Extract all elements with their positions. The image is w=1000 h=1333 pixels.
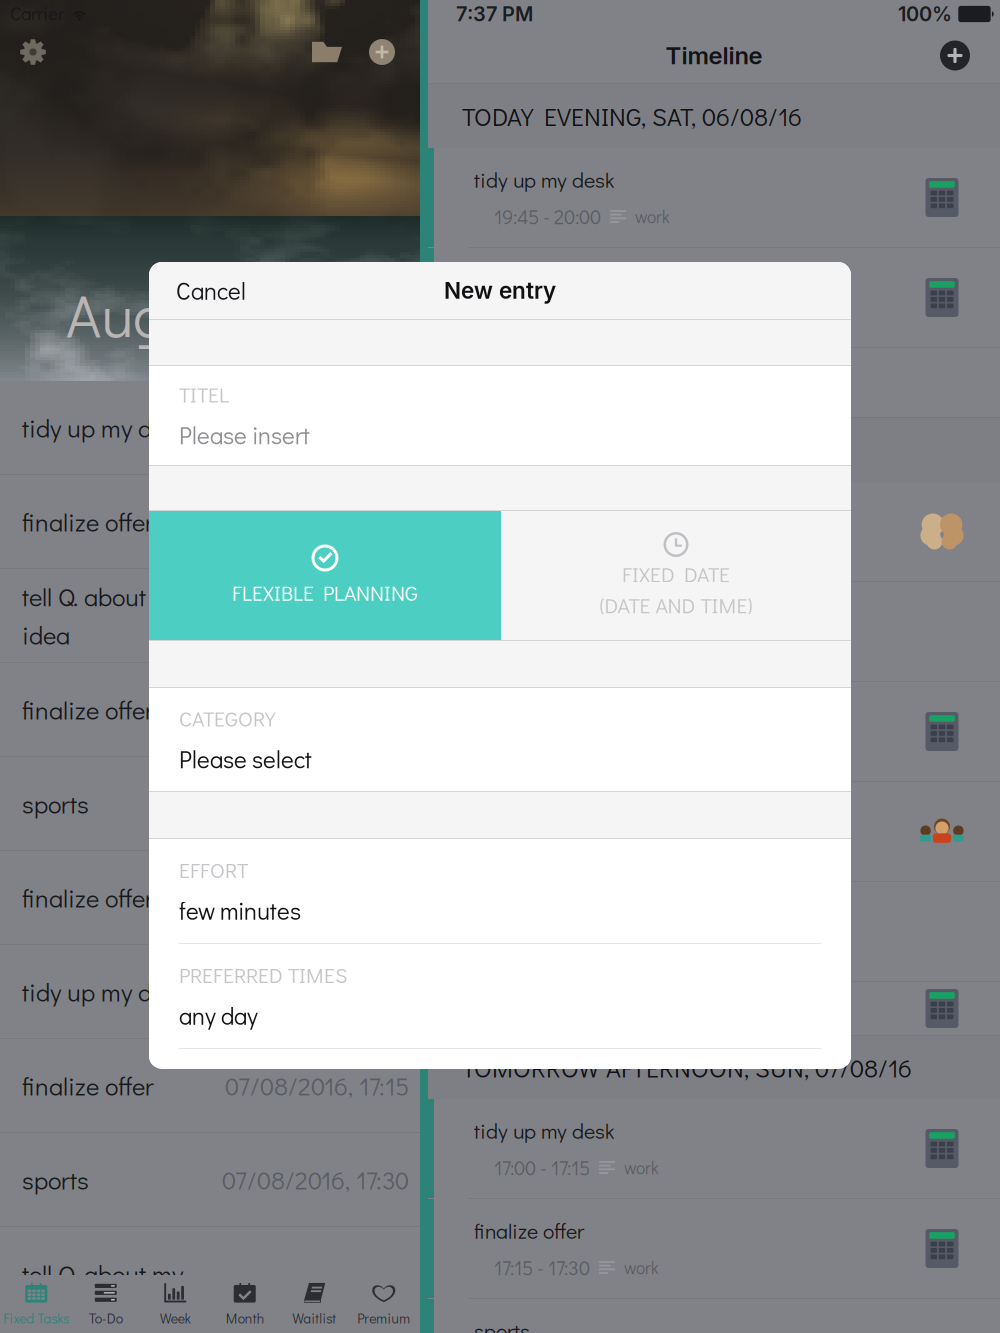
- staticText: sports: [22, 787, 89, 820]
- staticText: work: [635, 205, 670, 228]
- button[interactable]: Month: [210, 1275, 279, 1333]
- button[interactable]: CATEGORY: [149, 688, 851, 791]
- button[interactable]: tell Q. about my: [428, 482, 1000, 582]
- staticText: tell Q. about my: [474, 484, 609, 512]
- staticText: Premium: [357, 1309, 410, 1327]
- button[interactable]: finalize offer: [428, 882, 1000, 982]
- staticText: (DATE AND TIME): [599, 591, 752, 619]
- staticText: finalize offer: [22, 1069, 154, 1102]
- button[interactable]: Cancel: [172, 265, 250, 316]
- button[interactable]: sports: [0, 757, 420, 851]
- staticText: work: [634, 939, 669, 962]
- button[interactable]: tidy up my desk: [0, 381, 420, 475]
- staticText: ideas: [628, 555, 670, 577]
- button[interactable]: sports: [0, 1133, 420, 1227]
- staticText: Fixed Tasks: [3, 1309, 69, 1327]
- staticText: CATEGORY: [179, 704, 275, 732]
- staticText: finalize offer: [474, 599, 584, 627]
- button[interactable]: Week: [140, 1275, 210, 1333]
- staticText: 22:00 - 23:00: [494, 837, 602, 864]
- staticText: idea: [474, 517, 515, 545]
- button[interactable]: sports: [428, 782, 1000, 882]
- staticText: finalize offer: [22, 693, 154, 726]
- staticText: 07/08/2016, 17:15: [225, 1069, 409, 1102]
- staticText: finalize offer: [474, 1216, 584, 1244]
- button[interactable]: finalize offer: [428, 1199, 1000, 1299]
- staticText: 100%: [898, 2, 952, 26]
- staticText: sports: [22, 1163, 89, 1196]
- staticText: New entry: [444, 277, 556, 304]
- button[interactable]: finalize offer: [0, 1039, 420, 1133]
- staticText: TONIGHT, SAT, 06/08/16: [462, 433, 721, 467]
- button[interactable]: finalize offer: [428, 582, 1000, 682]
- button[interactable]: Fixed Tasks: [1, 1275, 71, 1333]
- staticText: Waitlist: [292, 1309, 336, 1327]
- staticText: tell Q. about my: [22, 1257, 183, 1290]
- staticText: sports: [474, 350, 530, 378]
- staticText: TODAY EVENING, SAT, 06/08/16: [462, 99, 802, 133]
- button[interactable]: Add entry: [928, 28, 982, 82]
- button[interactable]: tidy up my desk: [428, 682, 1000, 782]
- button[interactable]: To-Do: [71, 1275, 140, 1333]
- staticText: Cancel: [176, 275, 246, 306]
- staticText: tidy up my desk: [22, 975, 188, 1008]
- button[interactable]: Waitlist: [279, 1275, 349, 1333]
- staticText: To-Do: [89, 1309, 123, 1327]
- button[interactable]: Premium: [349, 1275, 418, 1333]
- staticText: Please select: [179, 743, 312, 775]
- button[interactable]: FIXED DATE: [501, 511, 851, 640]
- staticText: few minutes: [179, 895, 301, 926]
- button[interactable]: tidy up my desk: [428, 1099, 1000, 1199]
- staticText: Week: [160, 1309, 191, 1327]
- staticText: any day: [179, 1000, 258, 1031]
- staticText: EFFORT: [179, 856, 248, 884]
- staticText: 21:30 - 21:45: [494, 637, 597, 664]
- button[interactable]: tidy up my desk: [428, 982, 1000, 1036]
- staticText: 17:00 - 17:15: [494, 1154, 590, 1181]
- button[interactable]: Settings: [4, 26, 62, 78]
- button[interactable]: Folders: [298, 26, 356, 78]
- button[interactable]: tidy up my desk: [428, 148, 1000, 248]
- staticText: Timeline: [665, 41, 762, 70]
- staticText: work: [624, 1156, 659, 1179]
- staticText: tidy up my desk: [474, 165, 614, 193]
- button[interactable]: sports: [428, 348, 1000, 418]
- staticText: TITEL: [179, 380, 229, 408]
- button[interactable]: tidy up my desk: [0, 945, 420, 1039]
- button[interactable]: sports: [428, 1299, 1000, 1333]
- staticText: 23:00 - 23:15: [494, 937, 600, 964]
- staticText: finalize offer: [22, 505, 154, 538]
- staticText: 17:15 - 17:30: [494, 1254, 590, 1281]
- button[interactable]: finalize offer: [0, 475, 420, 569]
- staticText: tidy up my desk: [474, 1116, 614, 1144]
- staticText: TOMORROW AFTERNOON, SUN, 07/08/16: [462, 1051, 912, 1084]
- button[interactable]: finalize offer: [428, 248, 1000, 348]
- staticText: 7:37 PM: [456, 2, 533, 26]
- staticText: 19:45 - 20:00: [494, 203, 601, 230]
- staticText: idea: [22, 618, 70, 651]
- staticText: Month: [226, 1309, 264, 1327]
- button[interactable]: tell Q. about my: [0, 569, 420, 663]
- staticText: August: [66, 274, 244, 353]
- button[interactable]: finalize offer: [0, 663, 420, 757]
- staticText: FLEXIBLE PLANNING: [232, 578, 418, 606]
- button[interactable]: EFFORT: [149, 839, 851, 943]
- staticText: finalize offer: [22, 881, 154, 914]
- staticText: 20:00 - 20:15: [494, 303, 600, 330]
- staticText: finalize offer: [474, 265, 584, 293]
- button[interactable]: FLEXIBLE PLANNING: [149, 511, 501, 640]
- button[interactable]: Add task: [356, 26, 408, 78]
- button[interactable]: TITEL: [149, 366, 851, 465]
- button[interactable]: PREFERRED TIMES: [149, 944, 851, 1048]
- staticText: Please insert: [179, 419, 310, 451]
- staticText: work: [631, 639, 666, 662]
- button[interactable]: tell Q. about my: [0, 1227, 420, 1321]
- button[interactable]: finalize offer: [0, 851, 420, 945]
